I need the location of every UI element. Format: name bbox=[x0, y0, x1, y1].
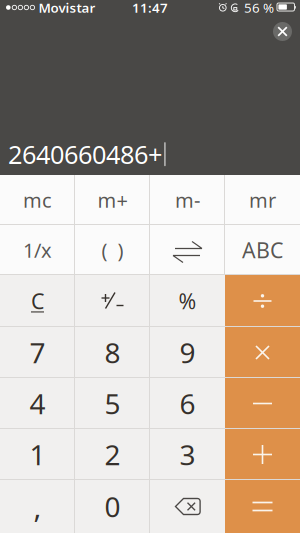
staticText: 9 bbox=[179, 334, 195, 371]
staticText: 0 bbox=[104, 488, 120, 525]
button[interactable]: C bbox=[0, 275, 75, 327]
button[interactable]: m+ bbox=[75, 175, 150, 225]
button[interactable]: 5 bbox=[75, 378, 150, 429]
button[interactable]: Swap bbox=[150, 225, 225, 275]
staticText: mc bbox=[23, 187, 52, 213]
button[interactable]: Minus bbox=[225, 378, 300, 429]
button[interactable]: 8 bbox=[75, 327, 150, 378]
button[interactable]: Close bbox=[273, 22, 292, 41]
staticText: Movistar bbox=[39, 0, 96, 16]
button[interactable]: 7 bbox=[0, 327, 75, 378]
button[interactable]: 1/x bbox=[0, 225, 75, 275]
button[interactable]: Divide bbox=[225, 275, 300, 327]
staticText: 6 bbox=[179, 385, 195, 422]
button[interactable]: 1 bbox=[0, 429, 75, 480]
staticText: 8 bbox=[104, 334, 120, 371]
button[interactable]: 3 bbox=[150, 429, 225, 480]
button[interactable]: Delete bbox=[150, 480, 225, 533]
staticText: 7 bbox=[29, 334, 45, 371]
staticText: 56 % bbox=[244, 0, 274, 16]
staticText: 11:47 bbox=[132, 0, 168, 16]
staticText: ABC bbox=[242, 236, 283, 264]
staticText: ( ) bbox=[101, 237, 123, 263]
button[interactable]: 0 bbox=[75, 480, 150, 533]
button[interactable]: Equals bbox=[225, 480, 300, 533]
staticText: , bbox=[33, 487, 41, 526]
button[interactable]: ( ) bbox=[75, 225, 150, 275]
button[interactable]: Plus bbox=[225, 429, 300, 480]
staticText: % bbox=[178, 287, 196, 315]
button[interactable]: 6 bbox=[150, 378, 225, 429]
staticText: m+ bbox=[97, 187, 127, 213]
button[interactable]: 9 bbox=[150, 327, 225, 378]
staticText: C bbox=[31, 287, 44, 315]
staticText: m- bbox=[175, 187, 200, 213]
staticText: 4 bbox=[29, 385, 45, 422]
staticText: 2640660486+ bbox=[8, 137, 162, 171]
staticText: 3 bbox=[179, 436, 195, 473]
button[interactable]: ABC bbox=[225, 225, 300, 275]
staticText: 2 bbox=[104, 436, 120, 473]
button[interactable]: Multiply bbox=[225, 327, 300, 378]
button[interactable]: 4 bbox=[0, 378, 75, 429]
button[interactable]: % bbox=[150, 275, 225, 327]
button[interactable]: 2 bbox=[75, 429, 150, 480]
button[interactable]: mr bbox=[225, 175, 300, 225]
button[interactable]: Plus minus bbox=[75, 275, 150, 327]
button[interactable]: mc bbox=[0, 175, 75, 225]
staticText: 1/x bbox=[23, 237, 52, 263]
staticText: 1 bbox=[29, 436, 45, 473]
button[interactable]: , bbox=[0, 480, 75, 533]
staticText: mr bbox=[249, 187, 276, 213]
staticText: 5 bbox=[104, 385, 120, 422]
button[interactable]: m- bbox=[150, 175, 225, 225]
